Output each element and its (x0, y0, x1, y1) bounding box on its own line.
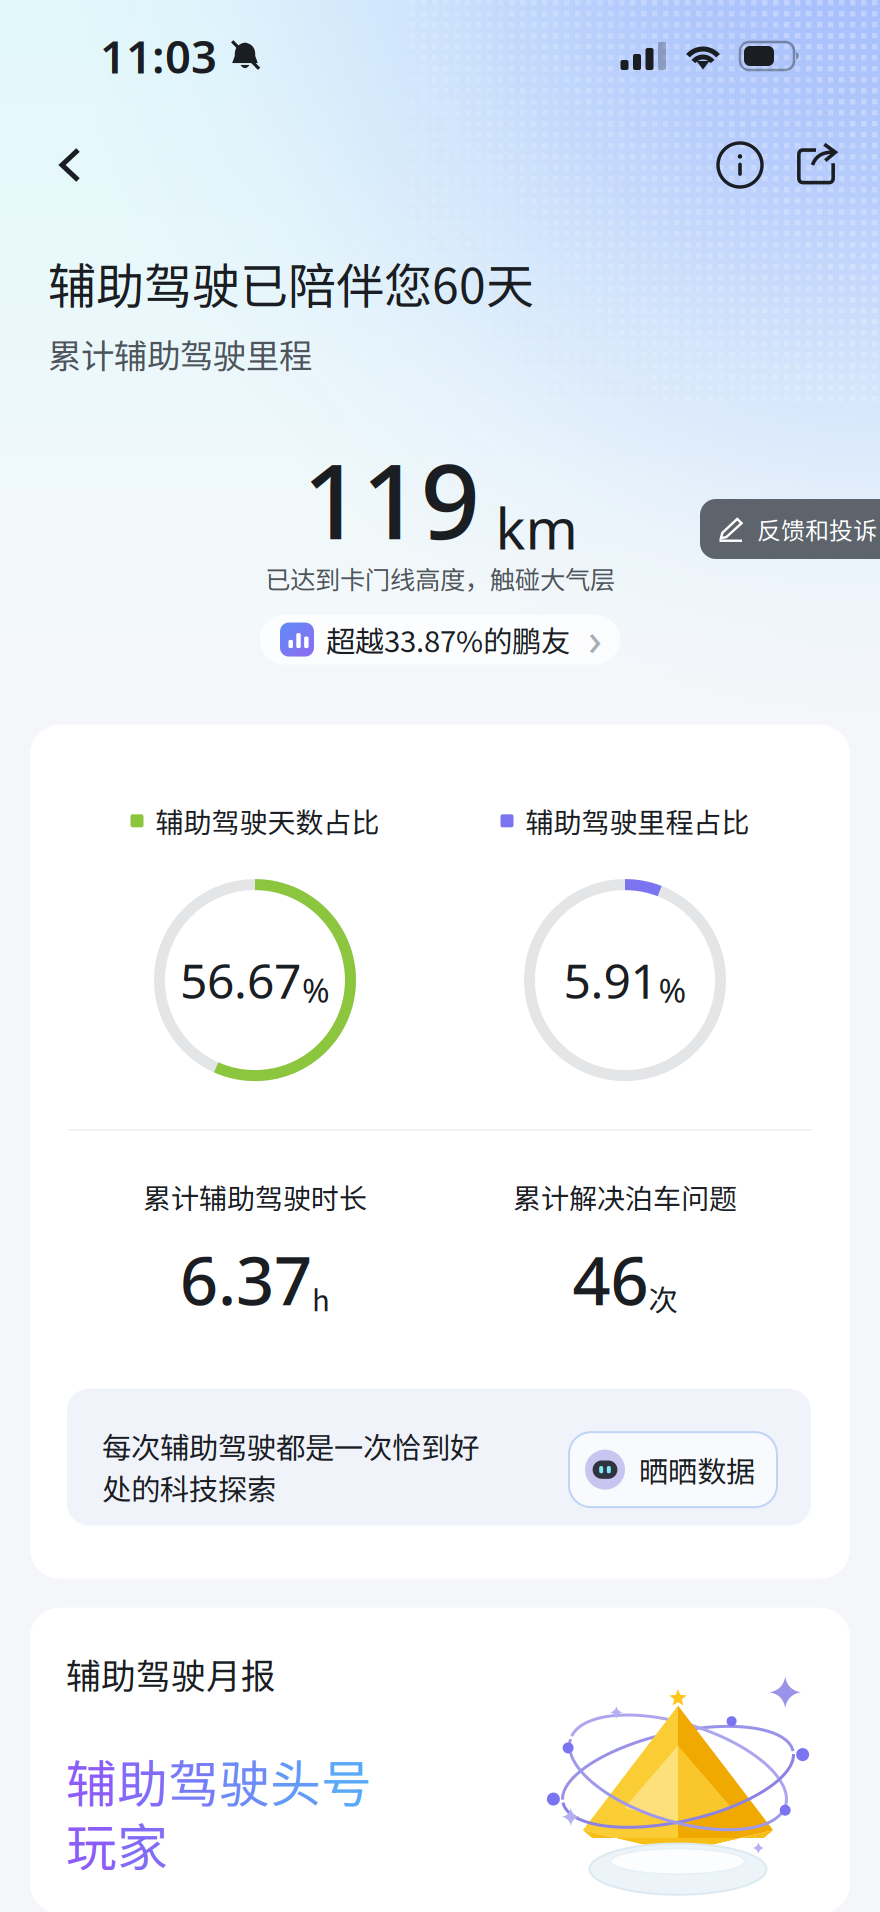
staticText: 晒晒数据 (639, 1448, 755, 1491)
staticText: 11:03 (100, 26, 217, 86)
staticText: 56.67 (180, 948, 301, 1012)
staticText: 驶 (219, 1744, 270, 1817)
staticText: km (495, 490, 577, 565)
staticText: 驾 (168, 1744, 219, 1817)
staticText: h (312, 1277, 330, 1320)
staticText: 累计辅助驾驶里程 (48, 329, 312, 378)
button[interactable]: Share (778, 112, 854, 218)
staticText: 6.37 (180, 1235, 312, 1324)
staticText: 46 (572, 1235, 648, 1324)
staticText: 每次辅助驾驶都是一次恰到好 (102, 1425, 479, 1467)
button[interactable]: 超越33.87%的鹏友 (260, 615, 620, 665)
staticText: 处的科技探索 (102, 1466, 276, 1509)
staticText: 119 (302, 430, 479, 568)
staticText: 辅助驾驶月报 (66, 1649, 276, 1699)
staticText: 累计解决泊车问题 (513, 1177, 737, 1217)
staticText: 头 (270, 1744, 321, 1817)
button[interactable]: Back (30, 112, 110, 218)
staticText: 5.91 (563, 948, 657, 1012)
staticText: 次 (648, 1277, 677, 1320)
staticText: 累计辅助驾驶时长 (143, 1177, 367, 1217)
staticText: % (658, 968, 686, 1012)
staticText: 家 (117, 1807, 168, 1881)
staticText: 辅助驾驶里程占比 (525, 801, 749, 841)
staticText: 已达到卡门线高度，触碰大气层 (265, 560, 615, 597)
staticText: 辅 (66, 1744, 117, 1817)
staticText: 玩 (66, 1807, 117, 1881)
staticText: % (302, 968, 330, 1012)
staticText: 反馈和投诉 (757, 512, 877, 546)
staticText: 号 (321, 1744, 372, 1817)
staticText: 辅助驾驶已陪伴您60天 (48, 248, 534, 317)
staticText: › (588, 608, 602, 668)
button[interactable]: Info (702, 112, 778, 218)
staticText: 助 (117, 1744, 168, 1817)
staticText: 辅助驾驶天数占比 (155, 801, 379, 841)
staticText: 超越33.87%的鹏友 (326, 618, 570, 661)
button[interactable]: 晒晒数据 (569, 1432, 777, 1507)
button[interactable]: 反馈和投诉 (700, 499, 880, 559)
